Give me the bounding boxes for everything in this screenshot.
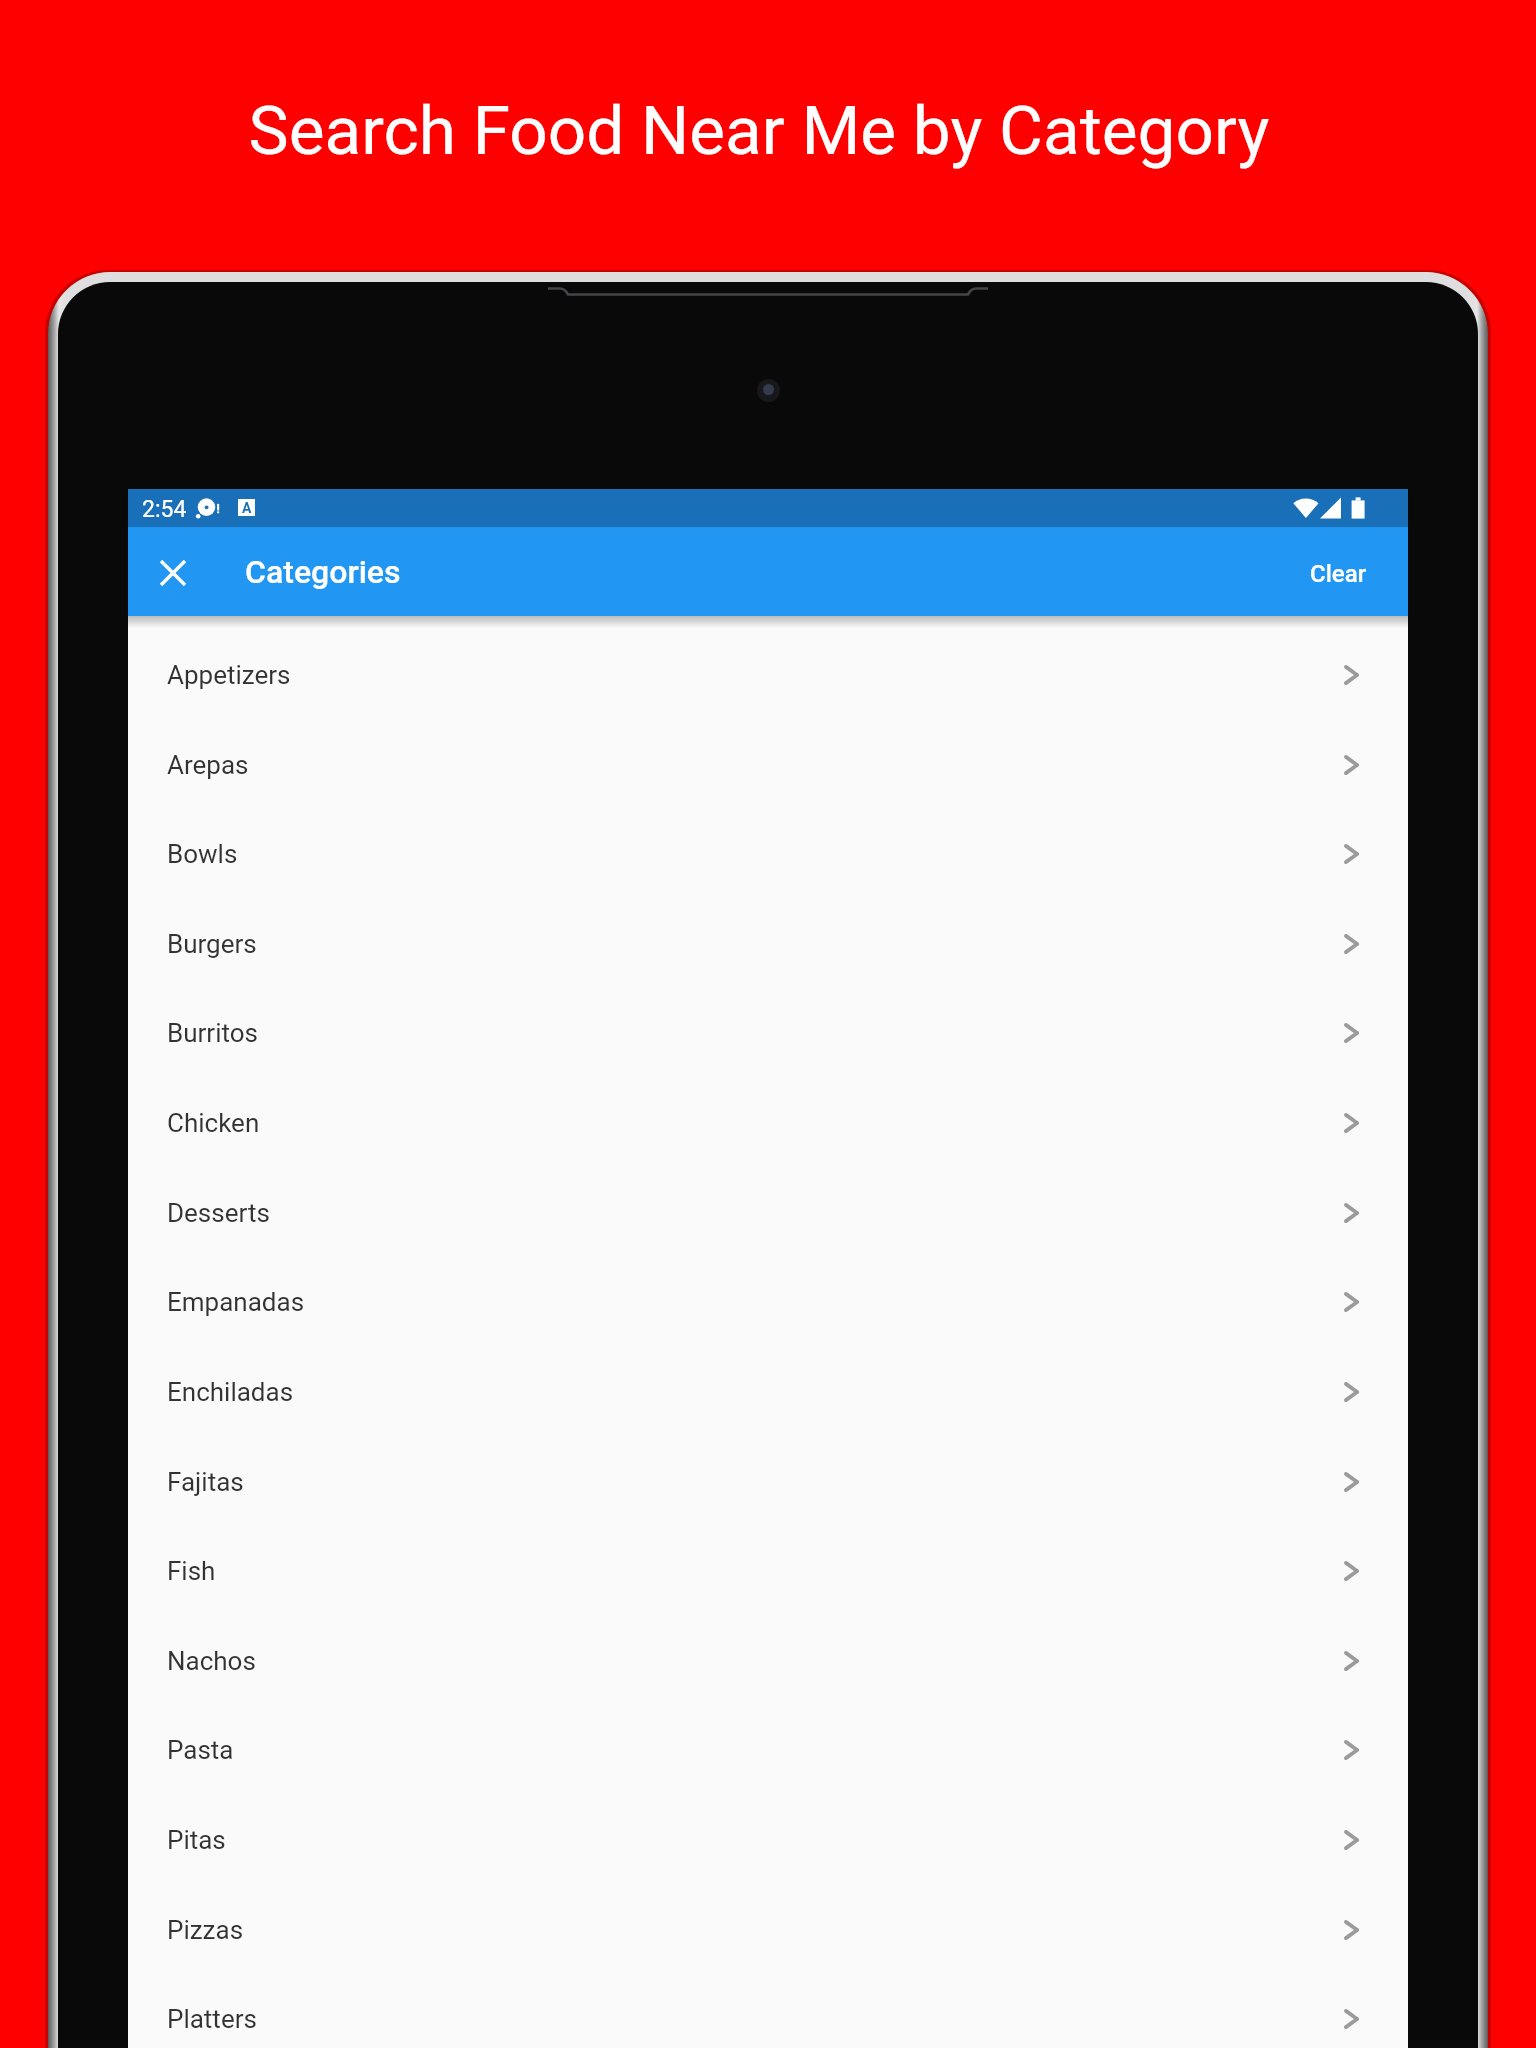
staticText: Burritos bbox=[167, 1018, 258, 1048]
button[interactable]: Nachos bbox=[128, 1616, 1408, 1706]
button[interactable]: Burgers bbox=[128, 899, 1408, 989]
button[interactable]: Fish bbox=[128, 1526, 1408, 1616]
button[interactable]: Bowls bbox=[128, 809, 1408, 899]
staticText: Platters bbox=[167, 2004, 257, 2034]
staticText: Fajitas bbox=[167, 1467, 244, 1497]
button[interactable]: Fajitas bbox=[128, 1437, 1408, 1527]
staticText: Arepas bbox=[167, 750, 249, 780]
button[interactable]: Arepas bbox=[128, 720, 1408, 810]
button[interactable]: Burritos bbox=[128, 988, 1408, 1078]
staticText: Bowls bbox=[167, 839, 238, 869]
button[interactable]: Desserts bbox=[128, 1168, 1408, 1258]
button[interactable]: Pizzas bbox=[128, 1885, 1408, 1975]
staticText: Search Food Near Me by Category bbox=[0, 91, 1527, 170]
staticText: Nachos bbox=[167, 1646, 256, 1676]
staticText: Fish bbox=[167, 1556, 216, 1586]
staticText: Desserts bbox=[167, 1198, 270, 1228]
button[interactable]: Appetizers bbox=[128, 630, 1408, 720]
staticText: Categories bbox=[245, 553, 401, 591]
staticText: Pizzas bbox=[167, 1915, 244, 1945]
staticText: Clear bbox=[1310, 560, 1367, 588]
staticText: Empanadas bbox=[167, 1287, 305, 1317]
button[interactable]: Chicken bbox=[128, 1078, 1408, 1168]
button[interactable]: Enchiladas bbox=[128, 1347, 1408, 1437]
button[interactable]: Close bbox=[142, 542, 203, 603]
staticText: Enchiladas bbox=[167, 1377, 294, 1407]
staticText: A bbox=[242, 500, 252, 516]
button[interactable]: Clear bbox=[1288, 544, 1389, 604]
staticText: Pasta bbox=[167, 1735, 234, 1765]
staticText: Chicken bbox=[167, 1108, 260, 1138]
staticText: Appetizers bbox=[167, 660, 291, 690]
button[interactable]: Pasta bbox=[128, 1705, 1408, 1795]
staticText: Pitas bbox=[167, 1825, 226, 1855]
staticText: Burgers bbox=[167, 929, 257, 959]
staticText: 2:54 bbox=[142, 496, 187, 523]
button[interactable]: Platters bbox=[128, 1974, 1408, 2048]
button[interactable]: Pitas bbox=[128, 1795, 1408, 1885]
button[interactable]: Empanadas bbox=[128, 1257, 1408, 1347]
